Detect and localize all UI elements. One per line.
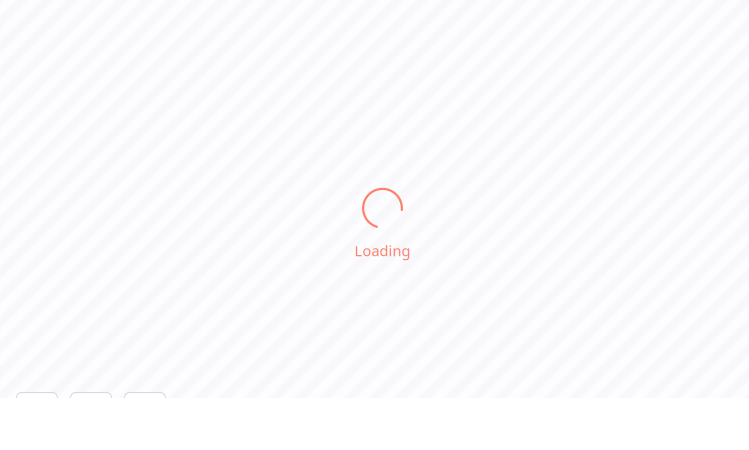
staticText: Loading [354,241,410,260]
button[interactable]: Loading placeholder [70,392,112,418]
button[interactable]: Loading placeholder [16,392,58,418]
button[interactable]: Loading placeholder [124,392,166,418]
